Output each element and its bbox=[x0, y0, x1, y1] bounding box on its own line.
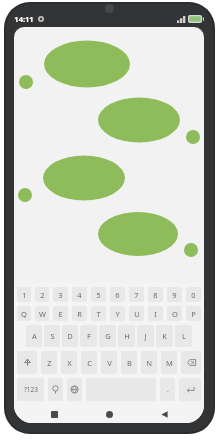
staticText: 4 bbox=[77, 290, 82, 300]
button[interactable]: U bbox=[129, 306, 144, 321]
staticText: 3 bbox=[58, 290, 63, 300]
staticText: G bbox=[105, 331, 111, 341]
button[interactable]: 4 bbox=[72, 287, 87, 302]
staticText: Y bbox=[115, 309, 120, 319]
button[interactable]: D bbox=[62, 325, 78, 347]
staticText: C bbox=[87, 358, 92, 368]
button[interactable]: 9 bbox=[167, 287, 182, 302]
button[interactable]: H bbox=[118, 325, 135, 347]
button[interactable]: 7 bbox=[129, 287, 144, 302]
staticText: J bbox=[144, 331, 147, 341]
staticText: N bbox=[146, 358, 152, 368]
staticText: 0 bbox=[191, 290, 196, 300]
button[interactable]: 2 bbox=[35, 287, 49, 302]
staticText: W bbox=[39, 309, 46, 319]
button[interactable]: J bbox=[137, 325, 154, 347]
staticText: X bbox=[67, 358, 72, 368]
button[interactable]: E bbox=[53, 306, 68, 321]
staticText: U bbox=[134, 309, 140, 319]
button[interactable]: 6 bbox=[110, 287, 125, 302]
button[interactable]: R bbox=[72, 306, 87, 321]
staticText: O bbox=[172, 309, 178, 319]
button[interactable]: 5 bbox=[91, 287, 106, 302]
staticText: B bbox=[127, 358, 132, 368]
button[interactable]: Shift bbox=[17, 351, 37, 374]
staticText: 1 bbox=[22, 290, 27, 300]
staticText: A bbox=[32, 331, 37, 341]
button[interactable]: T bbox=[91, 306, 106, 321]
staticText: Z bbox=[47, 358, 52, 368]
staticText: M bbox=[166, 358, 173, 368]
button[interactable]: Z bbox=[41, 351, 57, 374]
staticText: E bbox=[58, 309, 63, 319]
button[interactable]: Q bbox=[17, 306, 31, 321]
button[interactable]: C bbox=[81, 351, 97, 374]
button[interactable]: O bbox=[167, 306, 182, 321]
staticText: . bbox=[167, 385, 169, 395]
staticText: 6 bbox=[115, 290, 120, 300]
button[interactable]: X bbox=[61, 351, 77, 374]
button[interactable]: ?123 bbox=[17, 378, 44, 401]
staticText: R bbox=[77, 309, 82, 319]
button[interactable]: L bbox=[175, 325, 192, 347]
button[interactable]: Back bbox=[149, 405, 179, 423]
button[interactable]: Y bbox=[110, 306, 125, 321]
staticText: T bbox=[96, 309, 101, 319]
button[interactable]: Home bbox=[94, 405, 124, 423]
button[interactable]: Recents bbox=[39, 405, 69, 423]
button[interactable]: F bbox=[80, 325, 97, 347]
button[interactable]: M bbox=[161, 351, 177, 374]
button[interactable]: I bbox=[148, 306, 163, 321]
staticText: 5 bbox=[96, 290, 101, 300]
button[interactable]: Backspace bbox=[181, 351, 201, 374]
button[interactable]: A bbox=[26, 325, 42, 347]
staticText: 2 bbox=[40, 290, 45, 300]
staticText: 7 bbox=[134, 290, 139, 300]
button[interactable]: K bbox=[156, 325, 173, 347]
button[interactable]: S bbox=[44, 325, 60, 347]
staticText: Q bbox=[21, 309, 27, 319]
staticText: L bbox=[182, 331, 186, 341]
staticText: 9 bbox=[172, 290, 177, 300]
staticText: ?123 bbox=[24, 385, 38, 394]
button[interactable]: V bbox=[101, 351, 117, 374]
button[interactable]: N bbox=[141, 351, 157, 374]
button[interactable]: 3 bbox=[53, 287, 68, 302]
button[interactable]: P bbox=[186, 306, 201, 321]
staticText: P bbox=[191, 309, 196, 319]
button[interactable]: Enter bbox=[179, 378, 201, 401]
button[interactable]: 1 bbox=[17, 287, 31, 302]
staticText: K bbox=[162, 331, 167, 341]
staticText: I bbox=[154, 309, 157, 319]
button[interactable]: Emoji bbox=[48, 378, 63, 401]
button[interactable]: 8 bbox=[148, 287, 163, 302]
staticText: H bbox=[124, 331, 130, 341]
button[interactable]: . bbox=[160, 378, 175, 401]
button[interactable]: B bbox=[121, 351, 137, 374]
button[interactable]: G bbox=[99, 325, 116, 347]
staticText: V bbox=[107, 358, 112, 368]
staticText: 8 bbox=[153, 290, 158, 300]
button[interactable]: W bbox=[35, 306, 49, 321]
button[interactable]: Language bbox=[67, 378, 82, 401]
staticText: 14:11 bbox=[14, 14, 34, 24]
staticText: D bbox=[67, 331, 73, 341]
staticText: S bbox=[50, 331, 55, 341]
button[interactable]: 0 bbox=[186, 287, 201, 302]
staticText: F bbox=[87, 331, 91, 341]
